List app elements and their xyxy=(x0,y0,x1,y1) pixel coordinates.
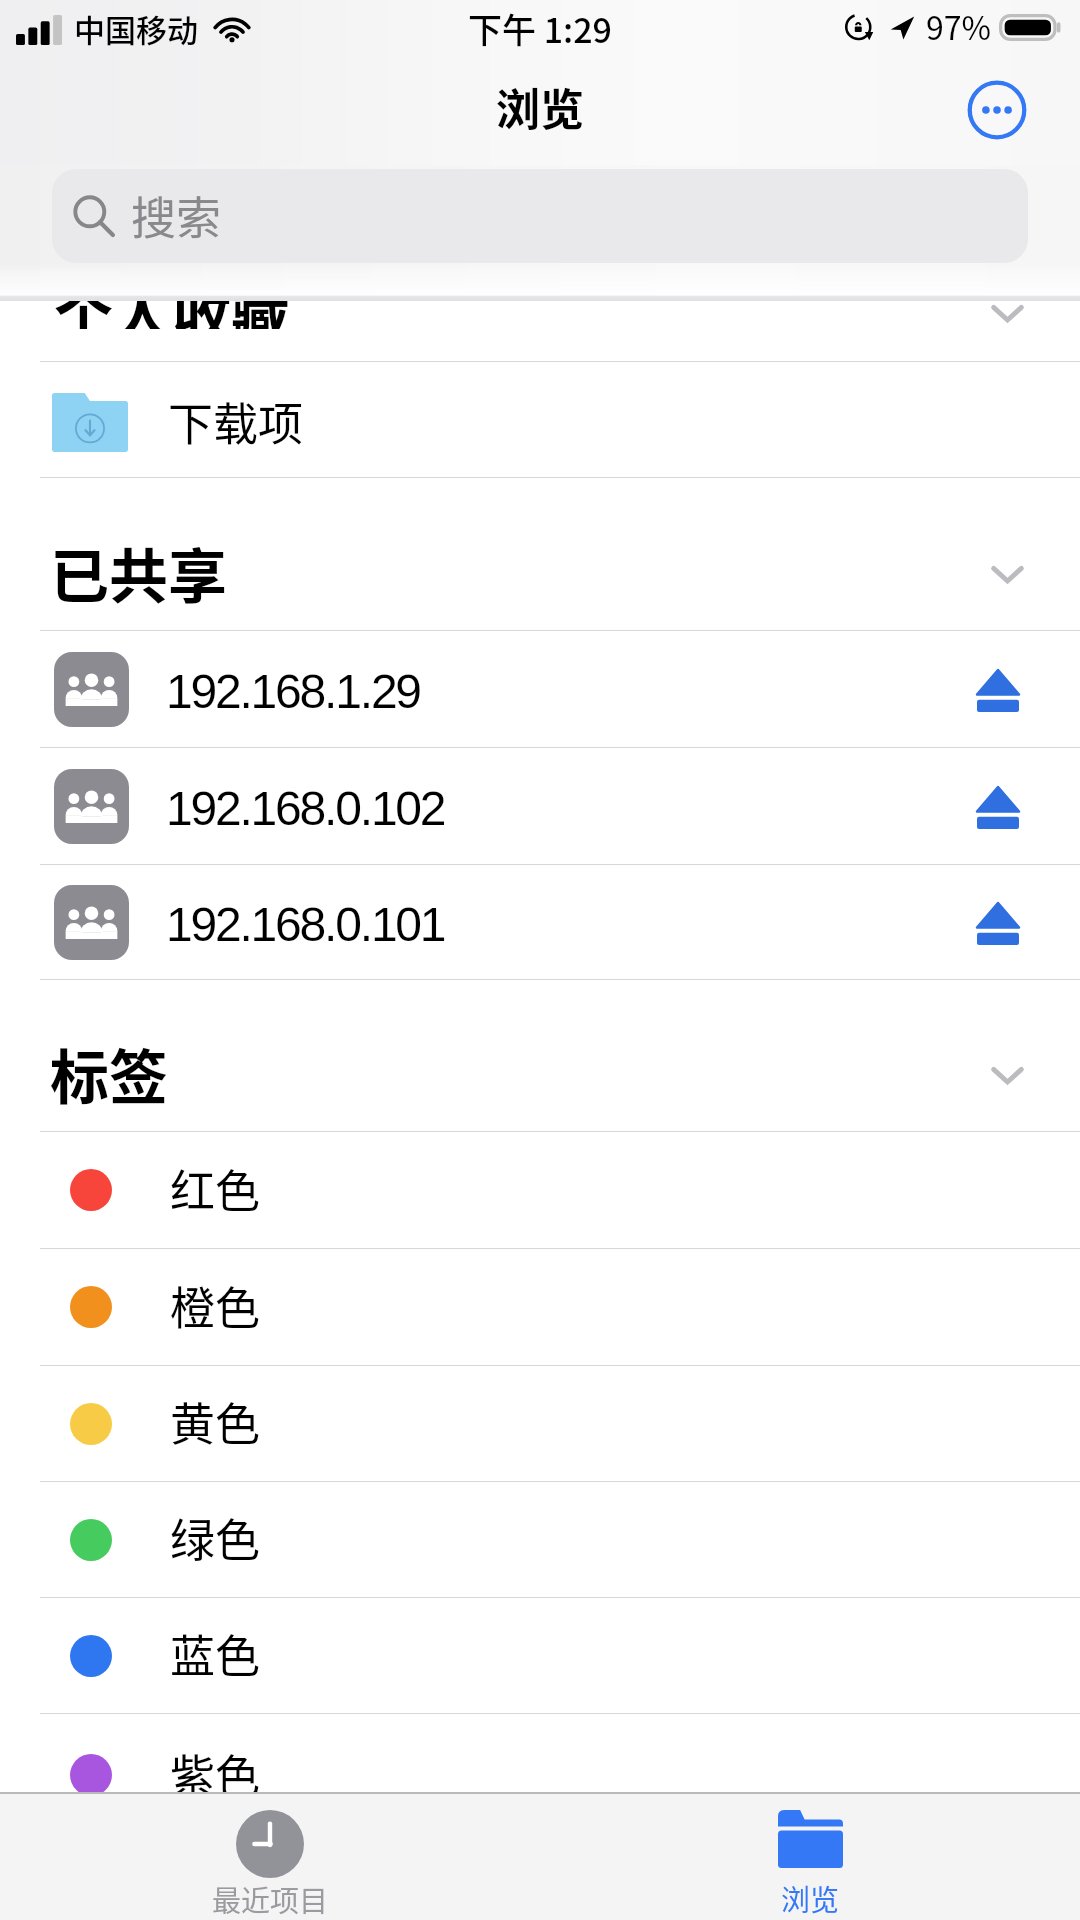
button[interactable]: 浏览 xyxy=(670,1794,950,1920)
staticText: 最近项目 xyxy=(212,1878,329,1920)
staticText: 绿色 xyxy=(170,1505,261,1570)
button[interactable]: 最近项目 xyxy=(130,1794,410,1920)
button[interactable]: Eject 192.168.1.29 xyxy=(954,645,1042,733)
staticText: 标签 xyxy=(50,1031,169,1116)
button[interactable]: 搜索 xyxy=(52,169,1028,263)
button[interactable]: 192.168.0.101 xyxy=(0,865,1080,979)
button[interactable]: Eject 192.168.0.102 xyxy=(954,762,1042,850)
button[interactable]: 蓝色 xyxy=(0,1598,1080,1713)
button[interactable]: Eject 192.168.0.101 xyxy=(954,878,1042,966)
staticText: 浏览 xyxy=(781,1877,840,1919)
staticText: 个人收藏 xyxy=(54,301,291,329)
button[interactable]: 红色 xyxy=(0,1132,1080,1248)
button[interactable]: 个人收藏 xyxy=(0,301,1080,361)
button[interactable]: More options xyxy=(967,80,1027,140)
staticText: 蓝色 xyxy=(170,1621,261,1686)
staticText: 192.168.1.29 xyxy=(166,665,420,719)
staticText: 黄色 xyxy=(170,1389,261,1454)
button[interactable]: 已共享 xyxy=(0,478,1080,630)
staticText: 192.168.0.101 xyxy=(166,898,445,952)
staticText: 已共享 xyxy=(50,530,228,615)
button[interactable]: 橙色 xyxy=(0,1249,1080,1365)
staticText: 红色 xyxy=(170,1156,261,1221)
staticText: 下午 1:29 xyxy=(468,4,612,53)
button[interactable]: 黄色 xyxy=(0,1366,1080,1481)
staticText: 中国移动 xyxy=(74,6,198,51)
button[interactable]: 下载项 xyxy=(0,362,1080,477)
staticText: 192.168.0.102 xyxy=(166,782,445,836)
staticText: 紫色 xyxy=(170,1741,261,1792)
button[interactable]: 192.168.1.29 xyxy=(0,631,1080,747)
button[interactable]: 绿色 xyxy=(0,1482,1080,1597)
staticText: 下载项 xyxy=(168,389,304,454)
button[interactable]: 标签 xyxy=(0,980,1080,1131)
button[interactable]: 192.168.0.102 xyxy=(0,748,1080,864)
staticText: 浏览 xyxy=(496,75,584,139)
button[interactable]: 紫色 xyxy=(0,1714,1080,1792)
staticText: 搜索 xyxy=(131,183,222,248)
staticText: 97% xyxy=(926,3,991,49)
staticText: 橙色 xyxy=(170,1273,261,1338)
